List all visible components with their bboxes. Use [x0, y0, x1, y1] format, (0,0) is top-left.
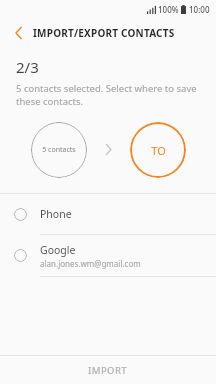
- button[interactable]: TO: [130, 122, 186, 178]
- staticText: 5 contacts: [42, 145, 76, 155]
- staticText: TO: [151, 143, 166, 158]
- staticText: 100%: [158, 4, 179, 15]
- staticText: 2/3: [16, 57, 39, 77]
- staticText: IMPORT/EXPORT CONTACTS: [33, 26, 175, 40]
- button[interactable]: Back: [9, 23, 29, 43]
- staticText: IMPORT: [88, 364, 128, 377]
- staticText: 10:00: [189, 4, 210, 15]
- staticText: Phone: [40, 207, 72, 221]
- staticText: alan.jones.wm@gmail.com: [40, 258, 141, 269]
- button[interactable]: Google: [0, 235, 216, 276]
- staticText: Google: [40, 243, 76, 257]
- button[interactable]: Phone: [0, 194, 216, 234]
- button[interactable]: 5 contacts: [31, 122, 87, 178]
- button[interactable]: IMPORT: [0, 356, 216, 384]
- staticText: 5 contacts selected. Select where to sav…: [16, 82, 200, 108]
